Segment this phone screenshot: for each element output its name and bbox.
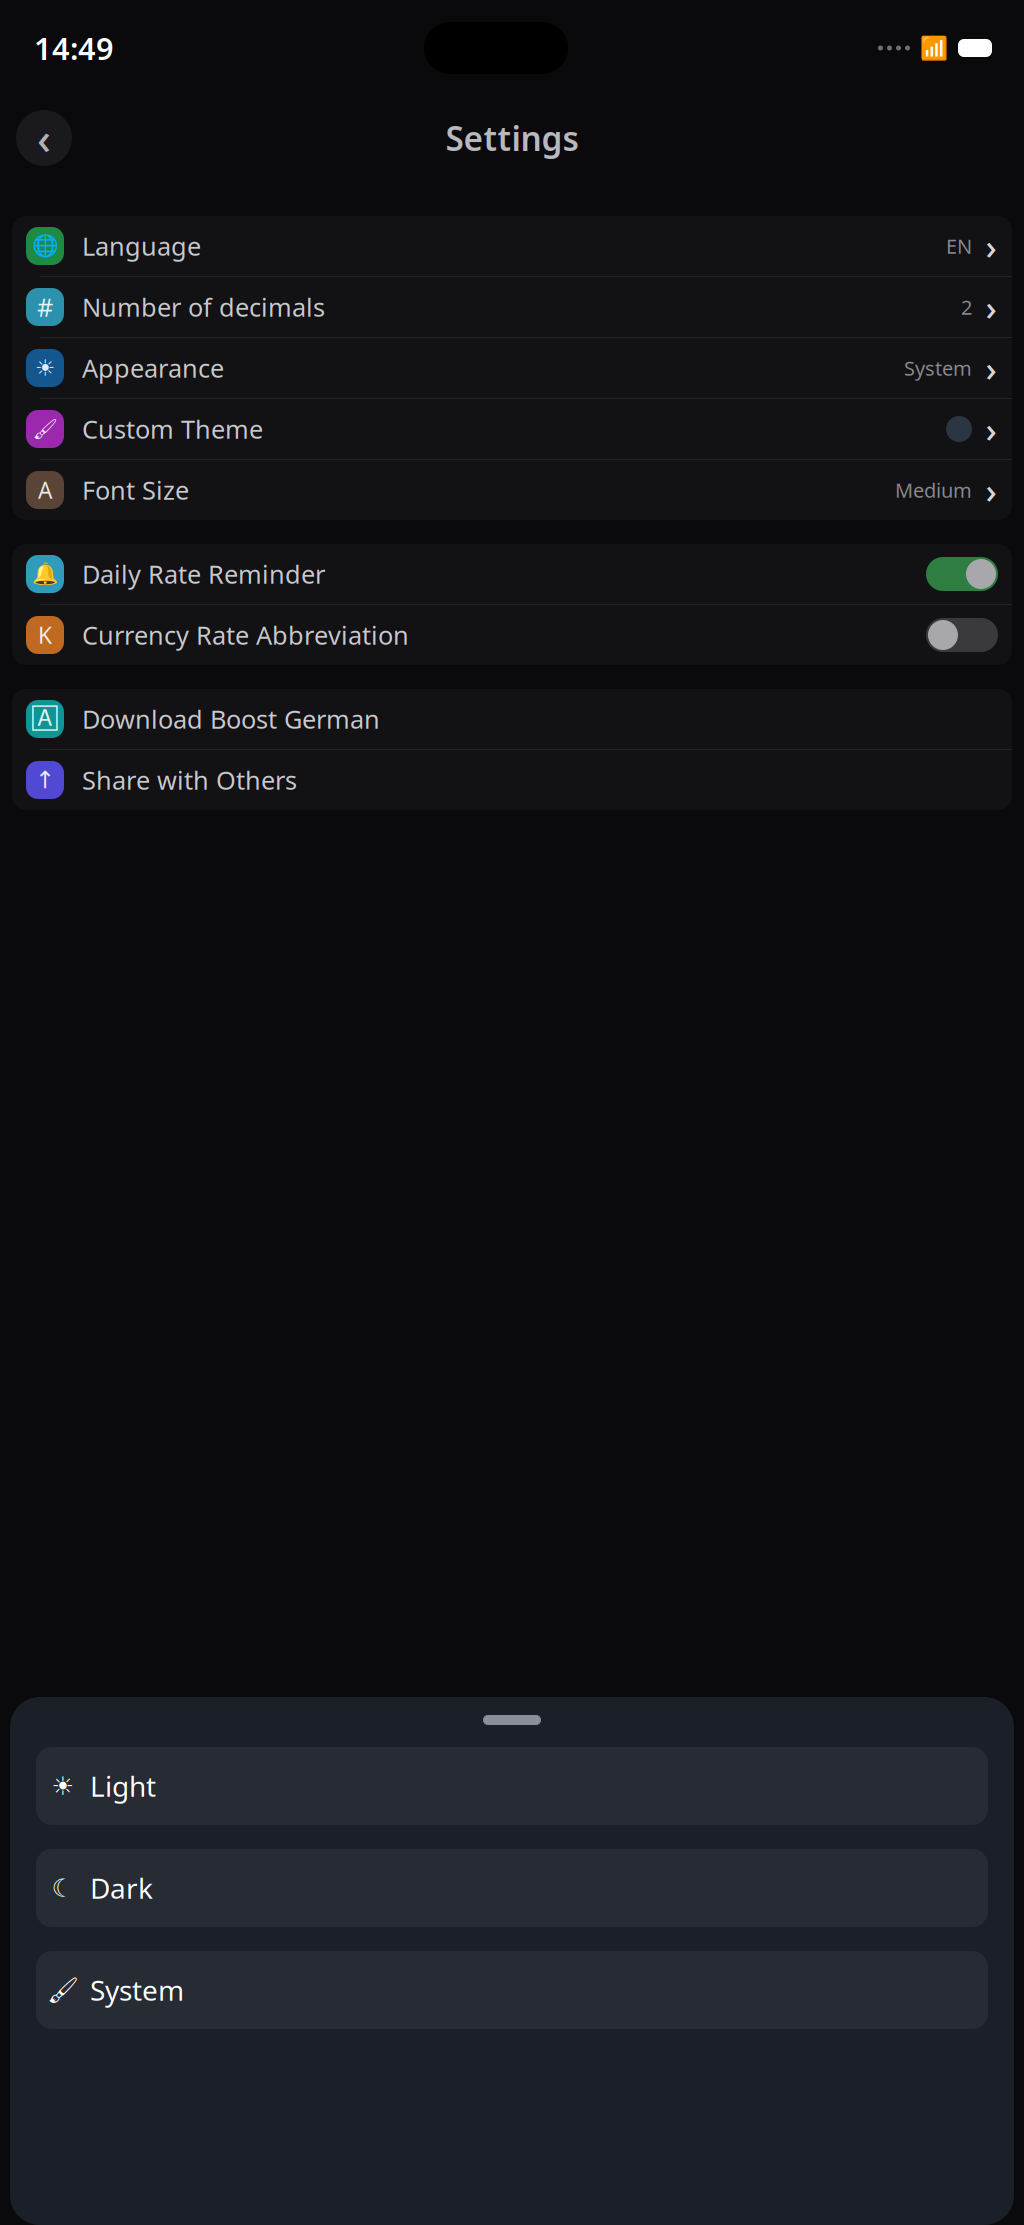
button[interactable]: A [12,460,1012,520]
staticText: Settings [445,116,578,160]
staticText: Download Boost German [82,702,380,736]
button[interactable]: ☀ [36,1747,988,1825]
staticText: A [38,475,52,505]
button[interactable]: 🌐 [12,216,1012,276]
staticText: 🌐 [31,234,58,258]
staticText: 🔔 [31,562,58,586]
staticText: 14:49 [34,28,114,68]
staticText: Medium [895,477,972,503]
staticText: › [985,345,996,391]
button[interactable]: 🖌 [36,1951,988,2029]
staticText: ‹ [37,110,51,166]
button[interactable]: 🖌 [12,399,1012,459]
staticText: 📶 [920,35,948,61]
button[interactable]: 🔔 [12,544,1012,604]
staticText: Appearance [82,351,224,385]
staticText: 🖌 [32,418,57,440]
staticText: 🄰 [32,708,57,730]
button[interactable]: Back [16,110,72,166]
staticText: System [90,1971,184,2009]
staticText: › [985,467,996,513]
staticText: Dark [90,1869,153,1907]
staticText: ☾ [51,1874,74,1902]
staticText: Currency Rate Abbreviation [82,618,409,652]
button[interactable]: ☾ [36,1849,988,1927]
button[interactable]: # [12,277,1012,337]
staticText: Custom Theme [82,412,263,446]
staticText: › [985,223,996,269]
staticText: Light [90,1767,156,1805]
button[interactable]: ↑ [12,750,1012,810]
staticText: K [38,620,52,650]
staticText: › [985,284,996,330]
staticText: EN [946,233,972,259]
button[interactable]: K [12,605,1012,665]
button[interactable]: ☀ [12,338,1012,398]
staticText: Font Size [82,473,189,507]
staticText: System [904,355,972,381]
staticText: # [37,290,53,324]
button[interactable]: 🄰 [12,689,1012,749]
staticText: ☀ [35,355,55,381]
staticText: Language [82,229,201,263]
staticText: 2 [961,294,972,320]
staticText: ☀ [51,1772,74,1800]
staticText: Share with Others [82,763,297,797]
staticText: 🖌 [47,1975,79,2004]
staticText: › [985,406,996,452]
staticText: Number of decimals [82,290,325,324]
staticText: Daily Rate Reminder [82,557,325,591]
staticText: ↑ [35,766,55,794]
